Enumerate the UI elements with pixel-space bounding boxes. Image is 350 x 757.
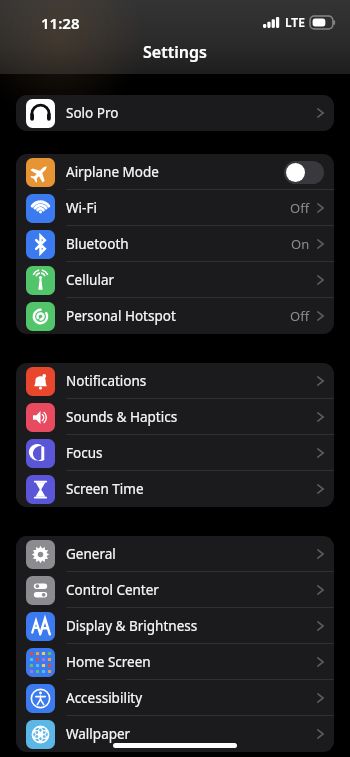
button[interactable]: Airplane Mode toggle bbox=[284, 161, 324, 184]
staticText: Airplane Mode bbox=[66, 163, 284, 181]
staticText: Sounds & Haptics bbox=[66, 408, 317, 426]
button[interactable]: Wallpaper bbox=[16, 716, 334, 752]
staticText: On bbox=[291, 235, 310, 253]
button[interactable]: General bbox=[16, 536, 334, 572]
button[interactable]: Cellular bbox=[16, 262, 334, 298]
button[interactable]: Focus bbox=[16, 435, 334, 471]
button[interactable]: Sounds & Haptics bbox=[16, 399, 334, 435]
button[interactable]: Bluetooth bbox=[16, 226, 334, 262]
staticText: Bluetooth bbox=[66, 235, 291, 253]
staticText: Cellular bbox=[66, 271, 317, 289]
staticText: Screen Time bbox=[66, 480, 317, 498]
staticText: Display & Brightness bbox=[66, 617, 317, 635]
staticText: LTE bbox=[285, 14, 305, 30]
button[interactable]: Home Screen bbox=[16, 644, 334, 680]
button[interactable]: Notifications bbox=[16, 363, 334, 399]
staticText: Wi-Fi bbox=[66, 199, 290, 217]
button[interactable]: Screen Time bbox=[16, 471, 334, 507]
button[interactable]: Wi-Fi bbox=[16, 190, 334, 226]
staticText: Settings bbox=[143, 41, 207, 63]
staticText: Personal Hotspot bbox=[66, 307, 290, 325]
staticText: Off bbox=[290, 199, 310, 217]
staticText: Home Screen bbox=[66, 653, 317, 671]
staticText: Solo Pro bbox=[66, 104, 317, 122]
staticText: General bbox=[66, 545, 317, 563]
staticText: Wallpaper bbox=[66, 725, 317, 743]
staticText: Off bbox=[290, 307, 310, 325]
staticText: Notifications bbox=[66, 372, 317, 390]
button[interactable]: Control Center bbox=[16, 572, 334, 608]
button[interactable]: Personal Hotspot bbox=[16, 298, 334, 334]
staticText: Focus bbox=[66, 444, 317, 462]
button[interactable]: Airplane Mode bbox=[16, 154, 334, 190]
staticText: 11:28 bbox=[41, 13, 80, 33]
staticText: Accessibility bbox=[66, 689, 317, 707]
button[interactable]: Display & Brightness bbox=[16, 608, 334, 644]
staticText: Control Center bbox=[66, 581, 317, 599]
button[interactable]: Accessibility bbox=[16, 680, 334, 716]
button[interactable]: Solo Pro bbox=[16, 95, 334, 131]
